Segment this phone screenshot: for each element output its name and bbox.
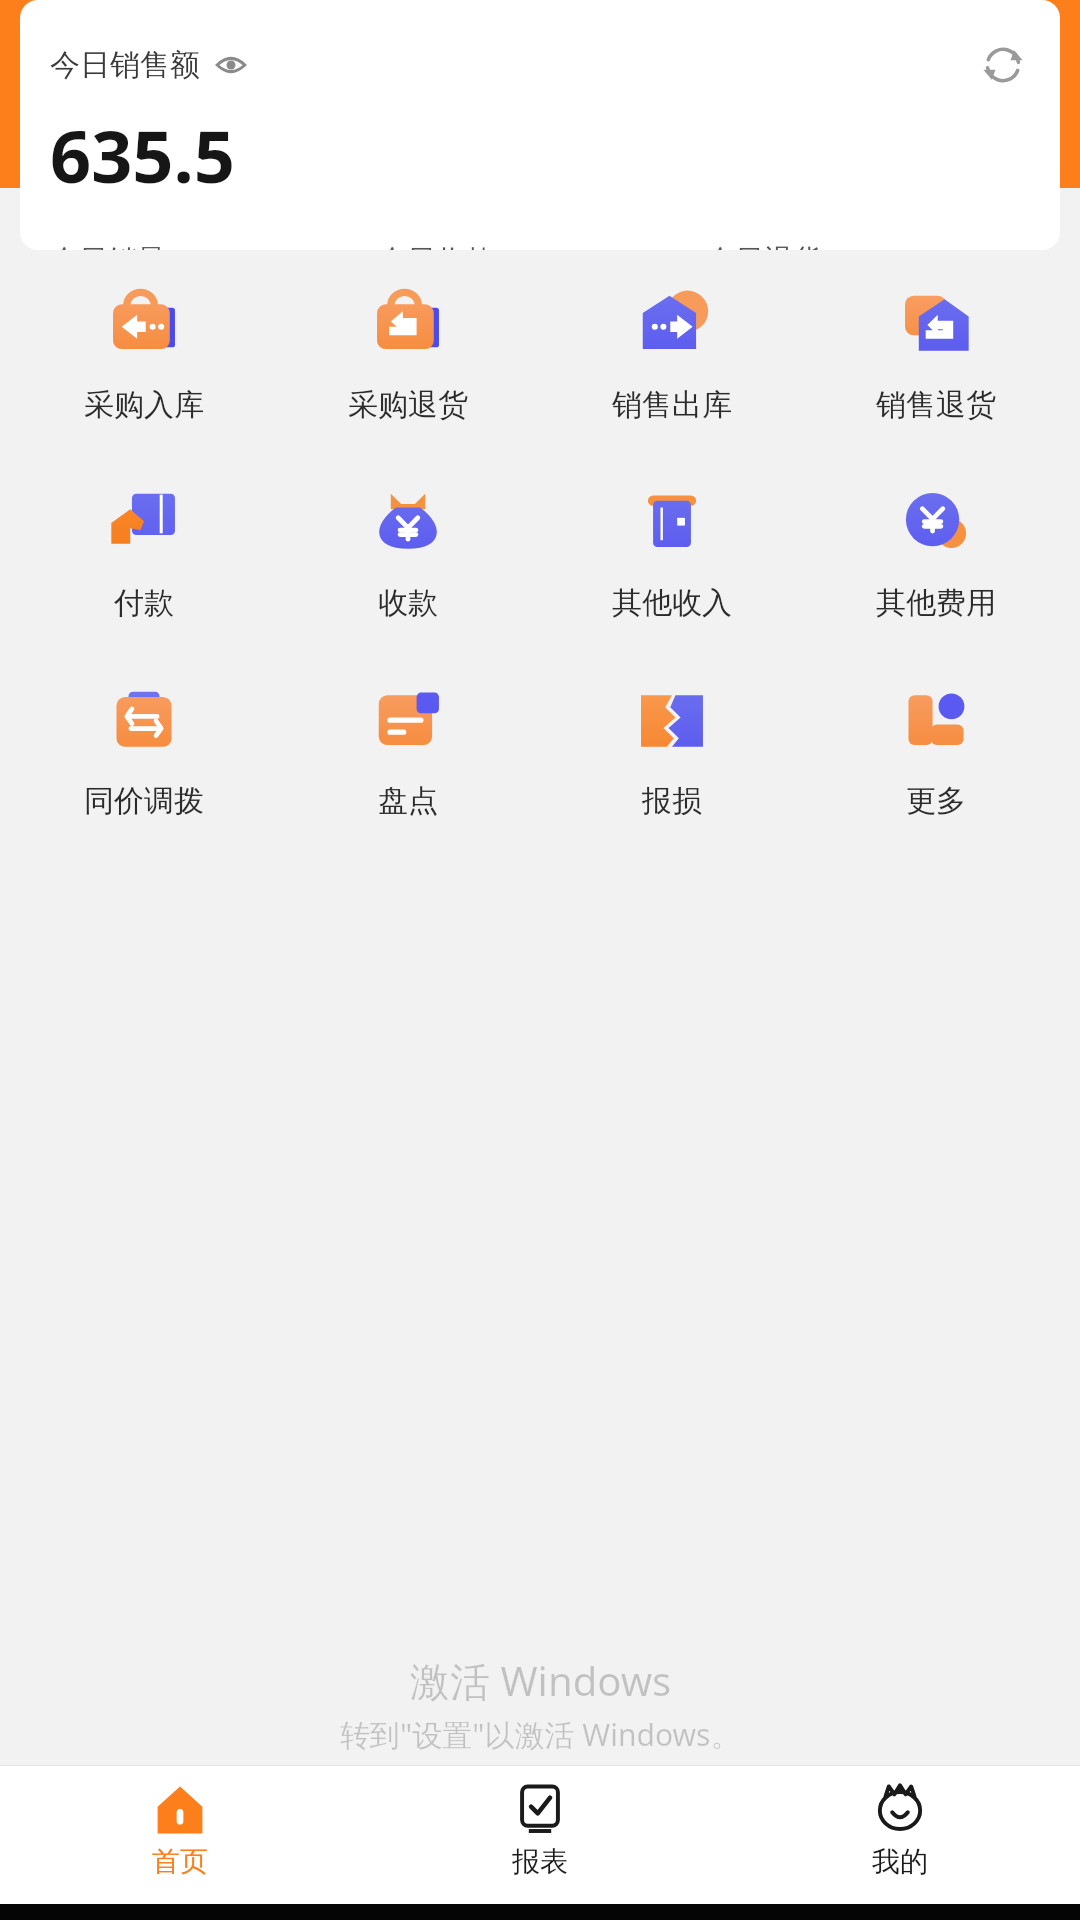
button[interactable]: Profile avatar <box>22 64 140 182</box>
button[interactable]: 其他收入 <box>540 470 804 632</box>
staticText: 收款 <box>276 584 540 622</box>
staticText: 今日销量 <box>50 242 166 250</box>
button[interactable]: 报表 <box>360 1766 720 1904</box>
staticText: 今日退货 <box>706 242 822 250</box>
staticText: 盘点 <box>276 782 540 820</box>
button[interactable]: 报损 <box>540 668 804 830</box>
button[interactable]: 付款 <box>12 470 276 632</box>
button[interactable]: 同价调拨 <box>12 668 276 830</box>
button[interactable]: 其他费用 <box>804 470 1068 632</box>
staticText: 付款 <box>12 584 276 622</box>
staticText: 激活 Windows <box>410 1653 672 1708</box>
staticText: 销售退货 <box>804 386 1068 424</box>
staticText: 报表 <box>360 1844 720 1879</box>
button[interactable]: 销售退货 <box>804 272 1068 434</box>
staticText: 其他费用 <box>804 584 1068 622</box>
staticText: 转到"设置"以激活 Windows。 <box>340 1714 741 1755</box>
button[interactable]: Toggle visibility <box>214 48 248 82</box>
staticText: 同价调拨 <box>12 782 276 820</box>
button[interactable]: 销售出库 <box>540 272 804 434</box>
button[interactable]: 采购入库 <box>12 272 276 434</box>
button[interactable]: 首页 <box>0 1766 360 1904</box>
staticText: 今日收款 <box>378 242 494 250</box>
staticText: 总部管理 <box>204 138 312 172</box>
staticText: 更多 <box>804 782 1068 820</box>
staticText: 管理员1 <box>164 75 307 130</box>
staticText: 今日销售额 <box>50 46 200 84</box>
button[interactable]: Refresh <box>972 34 1034 96</box>
button[interactable]: 盘点 <box>276 668 540 830</box>
button[interactable]: 我的 <box>720 1766 1080 1904</box>
staticText: 采购退货 <box>276 386 540 424</box>
staticText: 635.5 <box>50 106 235 204</box>
staticText: 其他收入 <box>540 584 804 622</box>
button[interactable]: 更多 <box>804 668 1068 830</box>
button[interactable]: 收款 <box>276 470 540 632</box>
staticText: 销售出库 <box>540 386 804 424</box>
staticText: 报损 <box>540 782 804 820</box>
button[interactable]: 采购退货 <box>276 272 540 434</box>
staticText: 我的 <box>720 1844 1080 1879</box>
staticText: 采购入库 <box>12 386 276 424</box>
staticText: 首页 <box>0 1844 360 1879</box>
button[interactable]: 今日销售额 <box>20 0 1060 250</box>
